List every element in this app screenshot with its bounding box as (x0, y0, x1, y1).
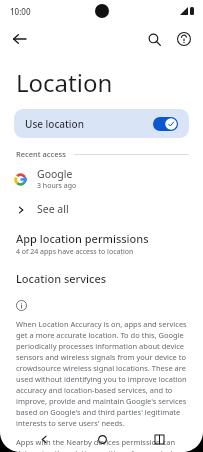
button[interactable]: App location permissions (0, 229, 203, 259)
staticText: 4 of 24 apps have access to location (16, 247, 134, 257)
staticText: Recent access (16, 149, 66, 159)
button[interactable]: Home (89, 426, 115, 452)
button[interactable]: Back (31, 426, 57, 452)
staticText: Location (16, 66, 113, 99)
button[interactable]: Help (169, 24, 199, 54)
staticText: When Location Accuracy is on, apps and s… (16, 319, 187, 428)
staticText: Use location (25, 117, 84, 131)
button[interactable]: Google (0, 165, 203, 193)
staticText: Google (37, 167, 73, 181)
staticText: 3 hours ago (37, 181, 77, 191)
button[interactable]: Recents (146, 426, 172, 452)
button[interactable]: Use location (14, 109, 189, 138)
button[interactable]: See all (0, 197, 203, 221)
button[interactable]: Back (4, 24, 34, 54)
staticText: Apps with the Nearby devices permission … (16, 437, 187, 452)
button[interactable]: Search (139, 24, 169, 54)
staticText: See all (37, 202, 69, 216)
staticText: 10:00 (10, 6, 31, 17)
staticText: App location permissions (16, 231, 149, 246)
staticText: Location services (16, 271, 107, 286)
